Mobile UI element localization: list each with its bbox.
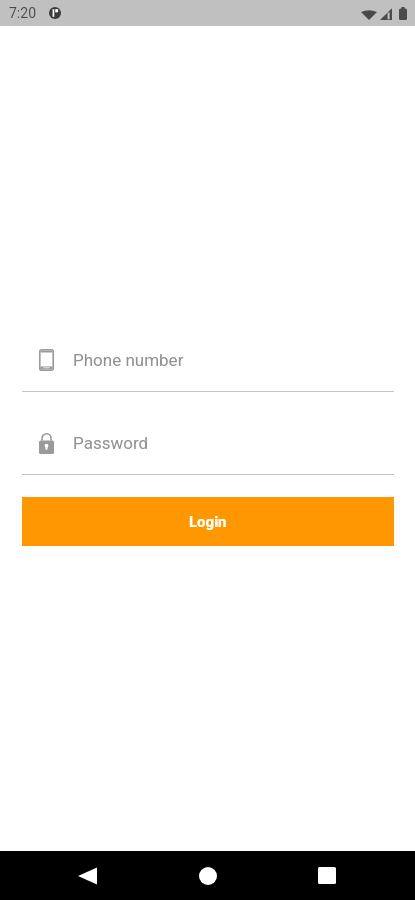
button[interactable]: Phone number [22,338,394,382]
other: Password [39,432,54,454]
other: Mobile signal [380,8,392,20]
button[interactable]: Password [22,421,394,465]
staticText: 7:20 [9,5,36,21]
other: Notification [49,7,61,19]
other: Battery [399,7,407,20]
staticText: Login [189,513,227,531]
other: Phone number [39,349,54,371]
staticText: Password [73,433,149,453]
button[interactable]: Home [178,851,238,900]
button[interactable]: Login [22,497,394,546]
staticText: Phone number [73,350,184,370]
button[interactable]: Back [57,851,117,900]
button[interactable]: Recent apps [297,851,357,900]
other: Wi-Fi [361,8,377,20]
